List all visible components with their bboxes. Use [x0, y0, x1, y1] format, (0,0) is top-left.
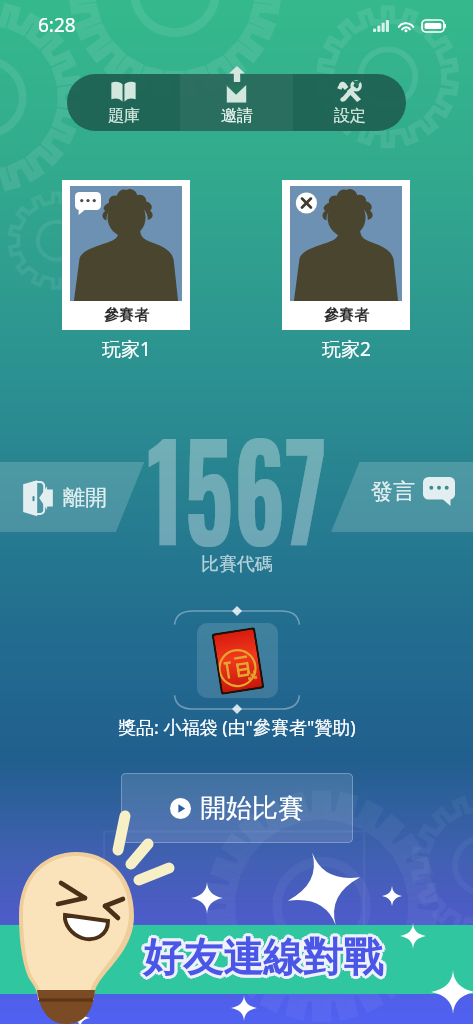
staticText: 比賽代碼 [201, 553, 273, 576]
staticText: 設定 [334, 106, 366, 126]
button[interactable]: Invite [180, 74, 293, 131]
staticText: 離開 [63, 484, 107, 512]
staticText: 好友連線對戰 [145, 934, 385, 984]
button[interactable]: Remove [282, 180, 410, 330]
staticText: 參賽者 [104, 306, 149, 325]
button[interactable]: Chat [75, 192, 101, 215]
staticText: 好友連線對戰 [141, 930, 381, 980]
staticText: 好友連線對戰 [141, 934, 381, 984]
staticText: 好友連線對戰 [146, 932, 386, 982]
staticText: 1567 [147, 390, 327, 550]
staticText: 參賽者 [324, 306, 369, 325]
button[interactable]: Settings [293, 74, 406, 131]
staticText: 好友連線對戰 [143, 935, 383, 985]
staticText: 6:28 [38, 12, 76, 38]
staticText: 好友連線對戰 [145, 930, 385, 980]
staticText: 邀請 [221, 106, 253, 126]
staticText: 好友連線對戰 [143, 932, 383, 982]
button[interactable]: 離開 [19, 477, 107, 519]
button[interactable]: Prize [172, 608, 302, 712]
staticText: 題庫 [108, 106, 140, 126]
staticText: 發言 [371, 478, 415, 506]
button[interactable]: 發言 [371, 477, 455, 506]
staticText: 玩家2 [322, 336, 371, 362]
staticText: 好友連線對戰 [140, 932, 380, 982]
button[interactable]: Chat [62, 180, 190, 330]
button[interactable]: 開始比賽 [121, 773, 353, 843]
button[interactable]: Question bank [67, 74, 180, 131]
staticText: 玩家1 [102, 336, 151, 362]
button[interactable]: Remove [295, 192, 321, 215]
staticText: 開始比賽 [200, 792, 304, 825]
staticText: 好友連線對戰 [143, 929, 383, 979]
staticText: 獎品: 小福袋 (由"參賽者"贊助) [118, 715, 356, 740]
